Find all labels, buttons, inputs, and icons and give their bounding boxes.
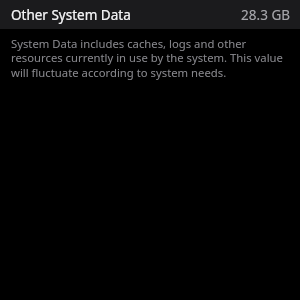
staticText: 28.3 GB: [241, 6, 290, 24]
staticText: Other System Data: [11, 6, 131, 24]
staticText: System Data includes caches, logs and ot…: [11, 36, 289, 81]
button[interactable]: Other System Data: [0, 0, 300, 29]
